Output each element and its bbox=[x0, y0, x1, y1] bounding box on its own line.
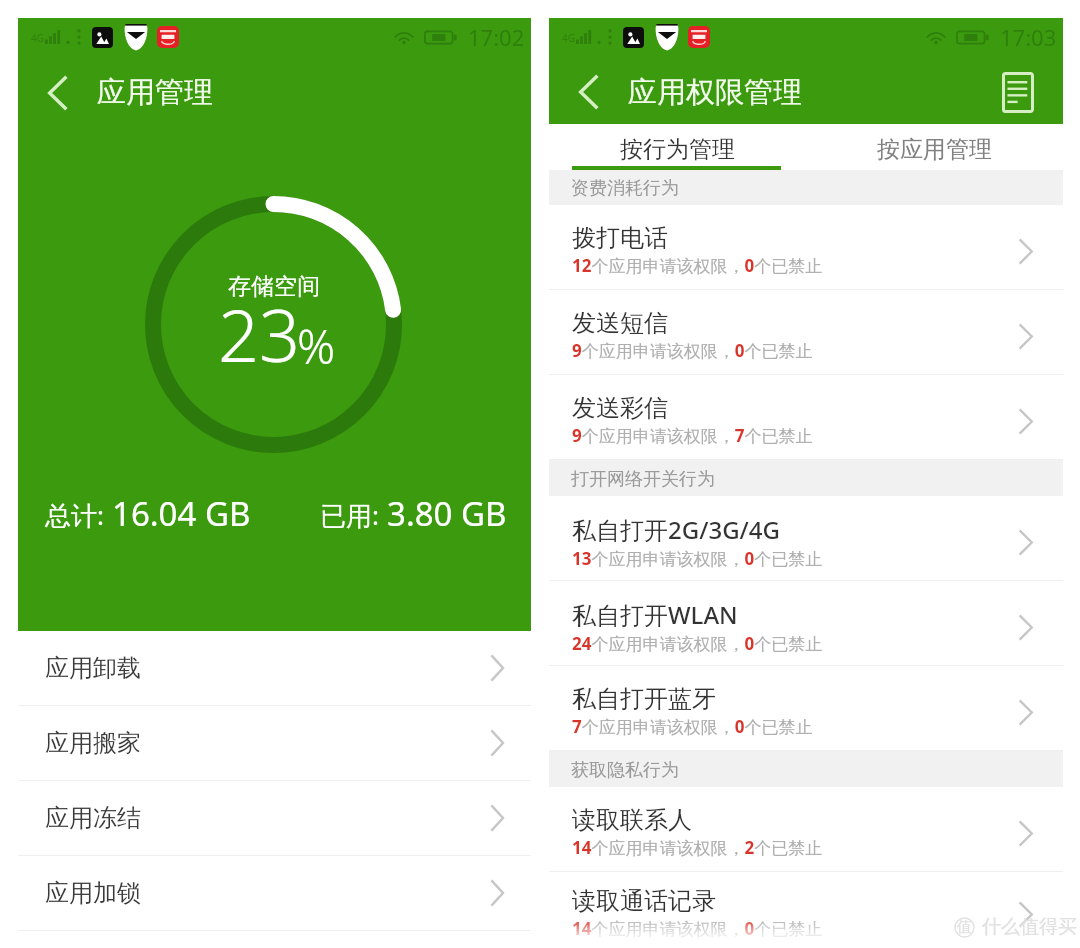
button[interactable]: 按行为管理 bbox=[549, 124, 806, 170]
staticText: 发送短信 bbox=[572, 308, 668, 338]
staticText: 应用卸载 bbox=[45, 653, 141, 683]
staticText: 读取联系人 bbox=[572, 805, 692, 835]
staticText: 3.80 GB bbox=[387, 491, 507, 536]
staticText: 14个应用申请该权限，2个已禁止 bbox=[572, 836, 823, 859]
staticText: 拨打电话 bbox=[572, 223, 668, 253]
button[interactable]: 应用卸载 bbox=[18, 631, 531, 705]
staticText: 16.04 GB bbox=[112, 491, 251, 536]
button[interactable]: 私自打开WLAN bbox=[549, 581, 1063, 665]
button[interactable]: 应用搬家 bbox=[18, 706, 531, 780]
staticText: 17:03 bbox=[1000, 22, 1057, 52]
staticText: 获取隐私行为 bbox=[571, 759, 679, 782]
staticText: 打开网络开关行为 bbox=[571, 468, 715, 491]
staticText: 13个应用申请该权限，0个已禁止 bbox=[572, 547, 823, 570]
button[interactable]: 应用冻结 bbox=[18, 781, 531, 855]
button[interactable]: 读取联系人 bbox=[549, 787, 1063, 871]
staticText: 12个应用申请该权限，0个已禁止 bbox=[572, 254, 823, 277]
staticText: 读取通话记录 bbox=[572, 886, 716, 916]
staticText: 17:02 bbox=[468, 22, 525, 52]
button[interactable]: 私自打开2G/3G/4G bbox=[549, 496, 1063, 580]
staticText: 9个应用申请该权限，0个已禁止 bbox=[572, 339, 813, 362]
staticText: 9个应用申请该权限，7个已禁止 bbox=[572, 424, 813, 447]
staticText: % bbox=[297, 314, 336, 378]
staticText: 24个应用申请该权限，0个已禁止 bbox=[572, 632, 823, 655]
staticText: 应用加锁 bbox=[45, 878, 141, 908]
staticText: 私自打开WLAN bbox=[572, 598, 738, 631]
button[interactable]: Permission log bbox=[972, 60, 1063, 124]
staticText: 7个应用申请该权限，0个已禁止 bbox=[572, 715, 813, 738]
staticText: 已用: bbox=[320, 497, 379, 533]
staticText: 应用管理 bbox=[97, 74, 213, 111]
staticText: 按应用管理 bbox=[877, 135, 992, 164]
button[interactable]: 读取通话记录 bbox=[549, 872, 1063, 948]
button[interactable]: 应用加锁 bbox=[18, 856, 531, 930]
staticText: 应用冻结 bbox=[45, 803, 141, 833]
button[interactable]: Back bbox=[18, 60, 97, 125]
button[interactable]: 发送彩信 bbox=[549, 375, 1063, 459]
button[interactable]: 私自打开蓝牙 bbox=[549, 666, 1063, 750]
staticText: 资费消耗行为 bbox=[571, 177, 679, 200]
staticText: 4G bbox=[562, 31, 575, 45]
staticText: 应用搬家 bbox=[45, 728, 141, 758]
button[interactable]: Back bbox=[549, 60, 628, 124]
staticText: 应用权限管理 bbox=[628, 74, 802, 111]
staticText: 发送彩信 bbox=[572, 393, 668, 423]
staticText: 4G bbox=[31, 31, 44, 45]
staticText: 私自打开蓝牙 bbox=[572, 684, 716, 714]
button[interactable]: 拨打电话 bbox=[549, 205, 1063, 289]
staticText: 23 bbox=[218, 285, 301, 383]
staticText: 私自打开2G/3G/4G bbox=[572, 513, 781, 546]
staticText: 值 bbox=[957, 918, 972, 937]
staticText: 14个应用申请该权限，0个已禁止 bbox=[572, 917, 823, 940]
staticText: 按行为管理 bbox=[620, 135, 735, 164]
button[interactable]: 按应用管理 bbox=[806, 124, 1063, 170]
staticText: 总计: bbox=[45, 497, 104, 533]
staticText: 什么值得买 bbox=[982, 915, 1077, 939]
staticText: 存储空间 bbox=[228, 272, 320, 301]
button[interactable]: 发送短信 bbox=[549, 290, 1063, 374]
